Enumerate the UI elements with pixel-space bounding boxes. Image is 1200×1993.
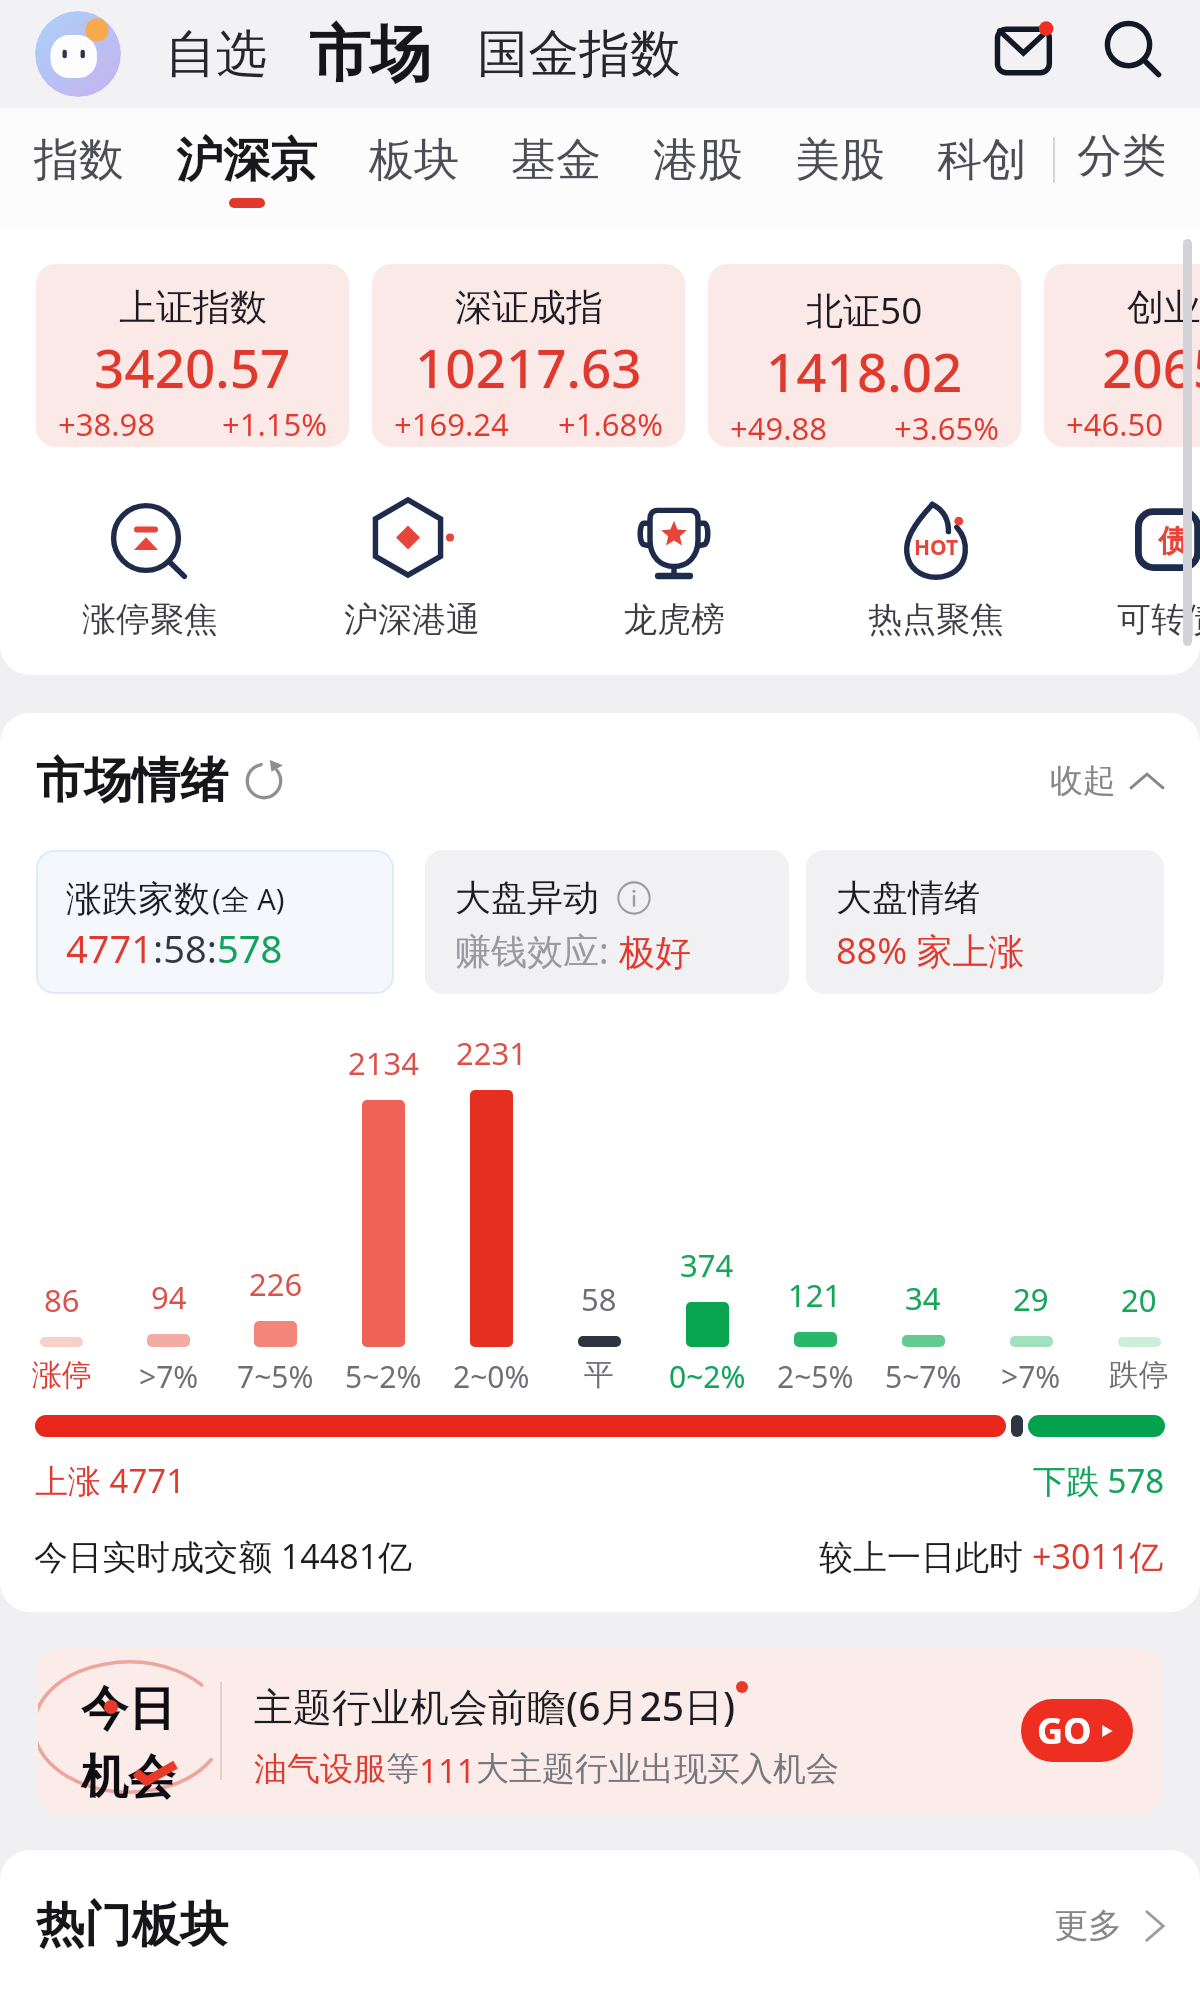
button[interactable]: Messages xyxy=(986,12,1064,90)
button[interactable]: 大盘情绪 xyxy=(806,850,1164,994)
staticText: 111 xyxy=(419,1748,476,1793)
staticText: 油气设服 xyxy=(254,1748,386,1790)
staticText: 自选 xyxy=(165,22,267,86)
button[interactable]: 沪深港通 xyxy=(281,500,543,641)
staticText: 赚钱效应: xyxy=(455,926,619,975)
staticText: 较上一日此时 xyxy=(819,1533,1032,1579)
staticText: 北证50 xyxy=(806,284,923,335)
staticText: 86 xyxy=(44,1279,80,1321)
staticText: 大盘情绪 xyxy=(836,875,980,920)
staticText: 58 xyxy=(581,1278,617,1320)
staticText: 收起 xyxy=(1050,760,1116,802)
staticText: 5~2% xyxy=(345,1356,422,1397)
staticText: 大盘异动 xyxy=(455,875,599,920)
staticText: 平 xyxy=(584,1356,614,1394)
staticText: 0~2% xyxy=(669,1356,746,1397)
button[interactable]: 创业板指 xyxy=(1044,264,1200,447)
staticText: 涨跌家数 xyxy=(66,876,210,921)
staticText: 港股 xyxy=(653,132,743,189)
button[interactable]: 沪深京 xyxy=(150,108,343,228)
button[interactable]: 国金指数 xyxy=(477,22,681,86)
button[interactable]: 更多 xyxy=(1054,1904,1172,1947)
button[interactable]: 涨停聚焦 xyxy=(19,500,281,641)
button[interactable]: 分类 xyxy=(1055,108,1186,228)
staticText: 2134 xyxy=(348,1042,419,1084)
staticText: 34 xyxy=(905,1277,941,1319)
staticText: 3420.57 xyxy=(94,331,291,403)
button[interactable]: 债 xyxy=(1037,500,1200,641)
staticText: 国金指数 xyxy=(477,22,681,86)
button[interactable]: Search xyxy=(1094,12,1172,90)
staticText: 7~5% xyxy=(237,1356,314,1397)
staticText: 指数 xyxy=(34,132,124,189)
staticText: 2231 xyxy=(456,1032,527,1074)
staticText: 热点聚焦 xyxy=(868,598,1004,641)
button[interactable]: 收起 xyxy=(1050,760,1164,802)
staticText: 上涨 4771 xyxy=(35,1458,186,1503)
button[interactable]: 港股 xyxy=(627,108,769,228)
staticText: 市场 xyxy=(309,16,431,93)
staticText: GO xyxy=(1037,1706,1092,1755)
staticText: 创业板指 xyxy=(1127,284,1200,331)
button[interactable]: 市场 xyxy=(309,16,431,93)
button[interactable]: 涨跌家数 xyxy=(36,850,394,994)
button[interactable]: 基金 xyxy=(485,108,627,228)
button[interactable]: 美股 xyxy=(769,108,911,228)
staticText: 龙虎榜 xyxy=(623,598,725,641)
staticText: 1418.02 xyxy=(766,335,963,407)
staticText: 下跌 578 xyxy=(1033,1458,1165,1503)
button[interactable]: 板块 xyxy=(343,108,485,228)
staticText: +1.15% xyxy=(222,403,327,445)
staticText: 大主题行业出现买入机会 xyxy=(476,1748,839,1790)
button[interactable]: 今日 xyxy=(38,1648,1162,1814)
staticText: 94 xyxy=(151,1276,187,1318)
staticText: :58: xyxy=(153,922,217,974)
staticText: 上证指数 xyxy=(119,284,267,331)
button[interactable]: 大盘异动 xyxy=(425,850,789,994)
staticText: 市场情绪 xyxy=(36,751,228,811)
button[interactable]: 自选 xyxy=(165,22,267,86)
staticText: +169.24 xyxy=(394,403,509,445)
staticText: 板块 xyxy=(369,132,459,189)
staticText: (全 A) xyxy=(212,879,285,919)
staticText: 578 xyxy=(217,922,283,974)
button[interactable]: 上证指数 xyxy=(36,264,349,447)
staticText: 涨停 xyxy=(32,1356,92,1394)
staticText: 机会 xyxy=(81,1748,175,1807)
staticText: 沪深港通 xyxy=(344,598,480,641)
staticText: 主题行业机会前瞻(6月25日) xyxy=(254,1679,736,1732)
staticText: 88% 家上涨 xyxy=(836,926,1025,975)
button[interactable]: GO xyxy=(1021,1699,1133,1762)
staticText: 科创 xyxy=(937,132,1027,189)
staticText: 沪深京 xyxy=(176,131,317,190)
staticText: 20 xyxy=(1121,1279,1157,1321)
button[interactable]: HOT xyxy=(805,500,1067,641)
staticText: 跌停 xyxy=(1109,1356,1169,1394)
button[interactable]: Refresh xyxy=(242,759,286,803)
button[interactable]: 龙虎榜 xyxy=(543,500,805,641)
button[interactable]: 北证50 xyxy=(708,264,1021,447)
staticText: 29 xyxy=(1013,1278,1049,1320)
staticText: 等 xyxy=(386,1748,419,1790)
staticText: 10217.63 xyxy=(415,331,642,403)
staticText: 热门板块 xyxy=(36,1895,228,1955)
staticText: +3.65% xyxy=(894,407,999,447)
staticText: 债 xyxy=(1158,522,1188,560)
staticText: +38.98 xyxy=(58,403,155,445)
staticText: >7% xyxy=(139,1356,199,1397)
staticText: 可转债 xyxy=(1117,598,1200,641)
staticText: +46.50 xyxy=(1066,403,1163,445)
button[interactable]: 指数 xyxy=(8,108,150,228)
staticText: 美股 xyxy=(795,132,885,189)
staticText: 基金 xyxy=(511,132,601,189)
staticText: 2~0% xyxy=(453,1356,530,1397)
staticText: 374 xyxy=(680,1244,734,1286)
staticText: 226 xyxy=(249,1263,303,1305)
button[interactable]: 科创 xyxy=(911,108,1053,228)
button[interactable]: 深证成指 xyxy=(372,264,685,447)
staticText: 分类 xyxy=(1077,128,1164,185)
button[interactable]: Profile xyxy=(35,11,121,97)
staticText: +3011亿 xyxy=(1032,1533,1164,1579)
staticText: 更多 xyxy=(1054,1904,1122,1947)
staticText: 涨停聚焦 xyxy=(82,598,218,641)
